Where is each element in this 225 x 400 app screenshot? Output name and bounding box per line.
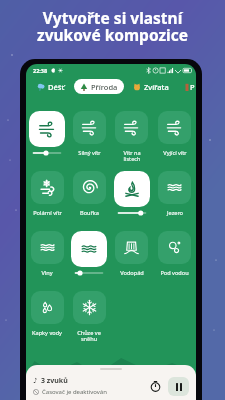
button[interactable]: Vodopád (110, 229, 153, 277)
button[interactable]: Déšť (31, 79, 71, 94)
staticText: Bouřka (80, 209, 99, 217)
button[interactable]: Polární vítr (26, 169, 68, 217)
staticText: Polární vítr (33, 209, 62, 217)
button[interactable]: Chůze ve sněhu (68, 289, 110, 343)
staticText: Jezero (167, 209, 183, 217)
staticText: Časovač je deaktivován (42, 388, 107, 396)
button[interactable] (68, 229, 110, 276)
staticText: Pod vodou (160, 269, 189, 277)
button[interactable]: Silný vítr (68, 109, 110, 157)
staticText: Vyjící vítr (163, 149, 187, 157)
button[interactable]: P (178, 79, 196, 94)
staticText: 3 zvuků (41, 376, 68, 386)
staticText: Vítr na listech (123, 149, 141, 163)
staticText: 22:38 (33, 67, 48, 74)
button[interactable]: Zvířata (127, 79, 175, 94)
staticText: Vlny (41, 269, 53, 277)
button[interactable]: Vítr na listech (110, 109, 153, 163)
staticText: Déšť (48, 82, 65, 92)
button[interactable]: Kapky vody (26, 289, 68, 337)
staticText: Chůze ve sněhu (77, 329, 101, 343)
staticText: Kapky vody (32, 329, 62, 337)
button[interactable]: Pod vodou (153, 229, 196, 277)
staticText: Vytvořte si vlastní zvukové kompozice (37, 7, 188, 46)
button[interactable]: Timer (146, 377, 164, 395)
staticText: ♪ (33, 377, 38, 385)
button[interactable]: Vyjící vítr (153, 109, 196, 157)
button[interactable]: Vlny (26, 229, 68, 277)
staticText: Zvířata (144, 82, 169, 92)
button[interactable]: Příroda (74, 79, 124, 94)
staticText: Vodopád (120, 269, 144, 277)
button[interactable]: Bouřka (68, 169, 110, 217)
staticText: Silný vítr (78, 149, 101, 157)
staticText: Příroda (91, 82, 118, 92)
button[interactable]: Pause (168, 377, 189, 396)
button[interactable] (26, 109, 68, 156)
button[interactable]: Jezero (153, 169, 196, 217)
button[interactable] (110, 169, 153, 216)
